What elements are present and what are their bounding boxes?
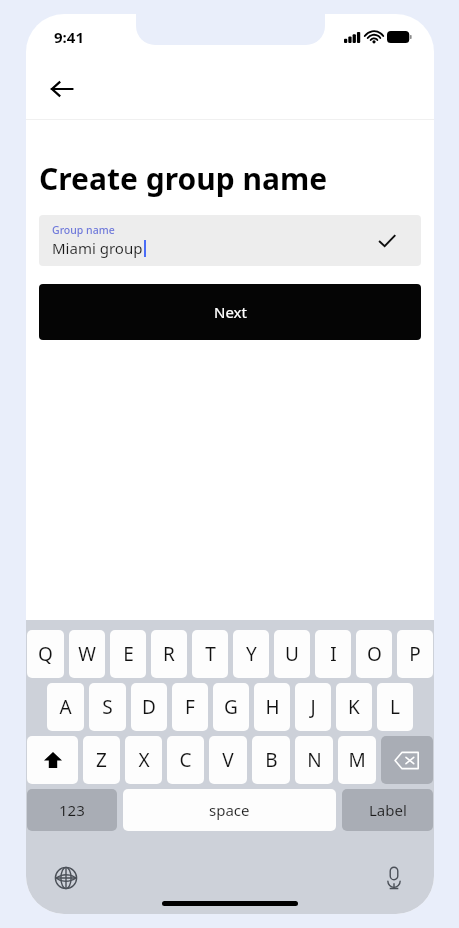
button[interactable]: 123	[27, 789, 117, 831]
button[interactable]: A	[47, 683, 84, 731]
button[interactable]: Change keyboard language	[48, 860, 84, 896]
button[interactable]: W	[69, 630, 105, 678]
staticText: C	[179, 747, 192, 773]
staticText: Q	[38, 641, 53, 667]
staticText: O	[367, 641, 382, 667]
staticText: X	[138, 747, 150, 773]
staticText: F	[185, 694, 195, 720]
button[interactable]: M	[338, 736, 376, 784]
button[interactable]: K	[336, 683, 372, 731]
button[interactable]: Label	[342, 789, 433, 831]
staticText: W	[78, 641, 96, 667]
button[interactable]: Z	[83, 736, 120, 784]
staticText: I	[330, 641, 337, 667]
button[interactable]: J	[295, 683, 331, 731]
staticText: K	[348, 694, 360, 720]
button[interactable]: F	[172, 683, 208, 731]
staticText: B	[265, 747, 278, 773]
button[interactable]: N	[295, 736, 333, 784]
button[interactable]: C	[167, 736, 204, 784]
staticText: space	[209, 800, 250, 820]
button[interactable]: Q	[27, 630, 64, 678]
button[interactable]: P	[397, 630, 433, 678]
staticText: D	[142, 694, 156, 720]
staticText: N	[307, 747, 322, 773]
staticText: 123	[59, 800, 85, 820]
staticText: Z	[96, 747, 107, 773]
staticText: Label	[369, 800, 407, 820]
button[interactable]: space	[123, 789, 336, 831]
staticText: R	[163, 641, 175, 667]
staticText: A	[59, 694, 72, 720]
button[interactable]: Next	[39, 284, 421, 340]
staticText: Group name	[52, 223, 115, 237]
button[interactable]: Y	[233, 630, 269, 678]
button[interactable]: U	[274, 630, 310, 678]
button[interactable]: X	[125, 736, 162, 784]
staticText: E	[123, 641, 134, 667]
button[interactable]: Back	[38, 65, 86, 113]
button[interactable]: L	[377, 683, 413, 731]
button[interactable]: R	[151, 630, 187, 678]
staticText: U	[285, 641, 299, 667]
button[interactable]: O	[356, 630, 392, 678]
button[interactable]: G	[213, 683, 249, 731]
button[interactable]: Backspace	[381, 736, 433, 784]
button[interactable]: T	[192, 630, 228, 678]
staticText: G	[224, 694, 238, 720]
button[interactable]: D	[131, 683, 167, 731]
staticText: V	[222, 747, 234, 773]
staticText: Create group name	[39, 158, 328, 199]
staticText: Miami group	[52, 238, 143, 258]
staticText: Y	[246, 641, 257, 667]
staticText: J	[310, 694, 316, 720]
button[interactable]: V	[209, 736, 247, 784]
button[interactable]: E	[110, 630, 146, 678]
button[interactable]: Voice input	[376, 860, 412, 896]
button[interactable]: S	[89, 683, 126, 731]
button[interactable]: Group name	[39, 215, 421, 266]
button[interactable]: I	[315, 630, 351, 678]
staticText: M	[348, 747, 366, 773]
button[interactable]: H	[254, 683, 290, 731]
staticText: S	[102, 694, 113, 720]
button[interactable]: B	[252, 736, 290, 784]
staticText: 9:41	[54, 27, 84, 47]
staticText: H	[265, 694, 280, 720]
staticText: T	[205, 641, 216, 667]
button[interactable]: Shift	[27, 736, 78, 784]
staticText: P	[409, 641, 421, 667]
staticText: Next	[214, 302, 247, 322]
staticText: L	[390, 694, 400, 720]
